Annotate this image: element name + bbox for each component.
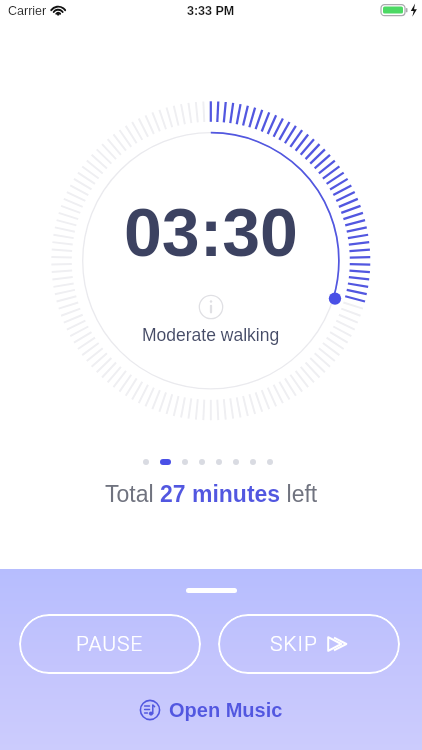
- staticText: Open Music: [169, 699, 283, 721]
- button[interactable]: Page 7: [250, 459, 256, 465]
- staticText: Carrier: [8, 4, 47, 18]
- button[interactable]: Info: [198, 294, 224, 320]
- button[interactable]: Page 6: [233, 459, 239, 465]
- button[interactable]: Page 3: [182, 459, 188, 465]
- button[interactable]: Page 4: [199, 459, 205, 465]
- button[interactable]: Open Music: [127, 694, 295, 726]
- staticText: Moderate walking: [142, 325, 280, 345]
- button[interactable]: Page 8: [267, 459, 273, 465]
- staticText: 3:33 PM: [187, 4, 235, 18]
- staticText: 03:30: [124, 194, 298, 270]
- staticText: SKIP: [270, 632, 318, 657]
- button[interactable]: SKIP: [218, 614, 400, 674]
- button[interactable]: Page 1: [143, 459, 149, 465]
- staticText: Total 27 minutes left: [105, 481, 318, 507]
- staticText: PAUSE: [76, 632, 144, 657]
- button[interactable]: PAUSE: [19, 614, 201, 674]
- button[interactable]: Drag handle: [186, 588, 237, 593]
- button[interactable]: Page 5: [216, 459, 222, 465]
- button[interactable]: Page 2: [160, 459, 171, 465]
